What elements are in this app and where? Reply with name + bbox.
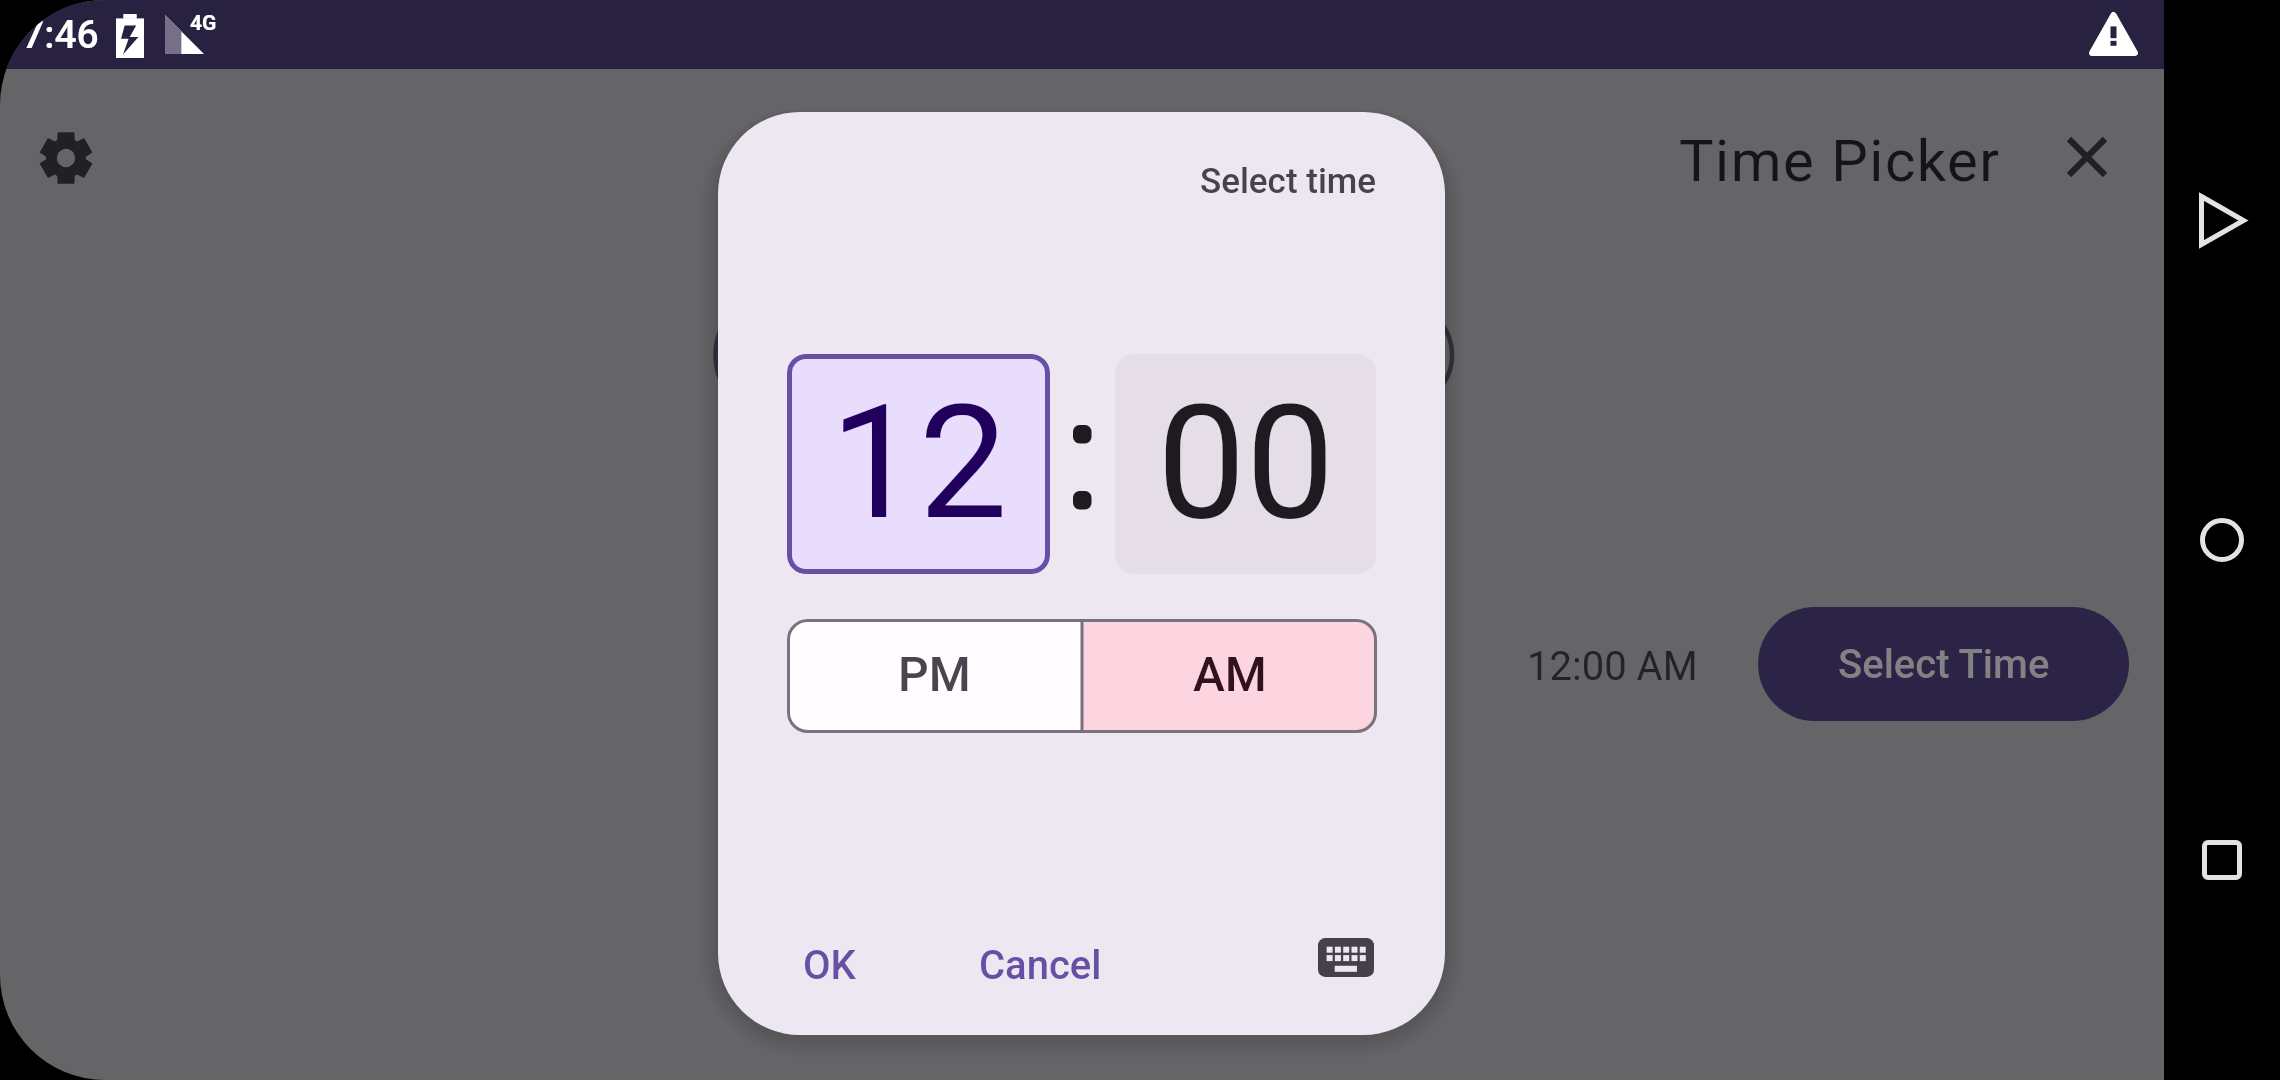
staticText: 12:00 AM (1527, 643, 1698, 690)
button[interactable]: 00 (1115, 354, 1376, 574)
button[interactable]: AM (1082, 619, 1377, 733)
button[interactable]: 12 (787, 354, 1050, 574)
button[interactable]: OK (792, 934, 866, 996)
button[interactable]: Cancel (960, 934, 1120, 996)
button[interactable]: Recents (2164, 802, 2280, 918)
staticText: 00 (1157, 370, 1335, 555)
button[interactable]: Close (2039, 109, 2135, 205)
staticText: 4G (190, 11, 217, 36)
button[interactable]: PM (787, 619, 1082, 733)
button[interactable]: Switch to text input (1310, 926, 1382, 988)
staticText: PM (898, 646, 971, 702)
staticText: OK (803, 942, 856, 989)
button[interactable]: Home (2164, 482, 2280, 598)
staticText: 12 (830, 370, 1008, 555)
staticText: Cancel (979, 942, 1102, 989)
staticText: AM (1193, 646, 1267, 702)
staticText: Select time (1200, 161, 1377, 202)
staticText: Time Picker (1679, 127, 2001, 195)
staticText: Select Time (1838, 641, 2050, 688)
button[interactable]: Back (2164, 162, 2280, 278)
button[interactable]: Select Time (1758, 607, 2129, 721)
staticText: 7:46 (22, 12, 99, 58)
button[interactable]: Settings (18, 110, 114, 206)
